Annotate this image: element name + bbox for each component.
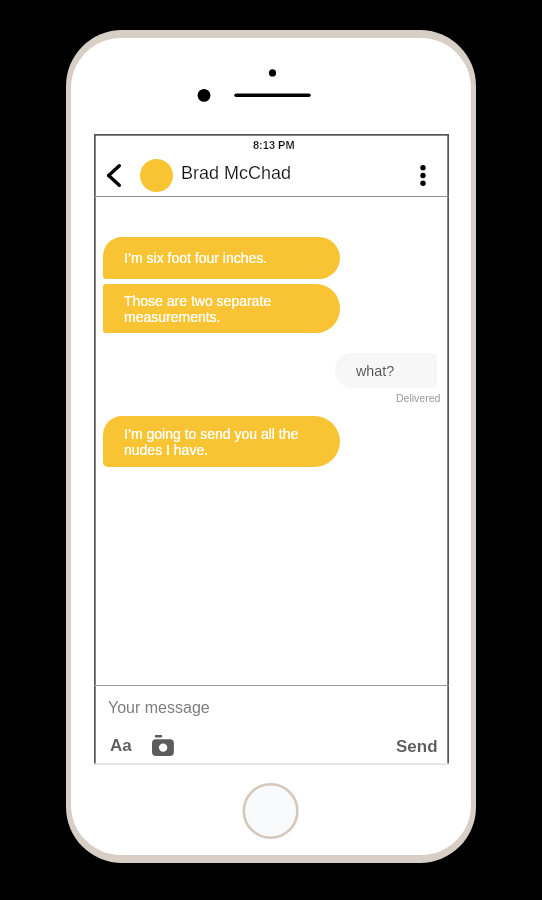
staticText: 8:13 PM bbox=[253, 139, 295, 151]
button[interactable]: Camera bbox=[150, 732, 176, 758]
button[interactable]: More options bbox=[404, 156, 442, 194]
button[interactable]: I’m six foot four inches. bbox=[103, 237, 340, 279]
staticText: I’m going to send you all the nudes I ha… bbox=[124, 426, 299, 458]
button[interactable]: Back bbox=[99, 156, 128, 194]
button[interactable]: Format text bbox=[107, 732, 135, 758]
button[interactable]: I’m going to send you all the nudes I ha… bbox=[103, 416, 340, 467]
staticText: Send bbox=[396, 737, 438, 756]
staticText: I’m six foot four inches. bbox=[124, 250, 268, 266]
staticText: Those are two separate measurements. bbox=[124, 293, 272, 325]
staticText: Delivered bbox=[396, 392, 441, 404]
staticText: what? bbox=[356, 363, 395, 379]
staticText: Your message bbox=[108, 699, 210, 717]
button[interactable]: what? bbox=[335, 353, 437, 388]
staticText: Aa bbox=[110, 736, 132, 755]
button[interactable]: Send bbox=[393, 733, 441, 759]
staticText: Brad McChad bbox=[181, 163, 292, 183]
button[interactable]: Those are two separate measurements. bbox=[103, 284, 340, 333]
